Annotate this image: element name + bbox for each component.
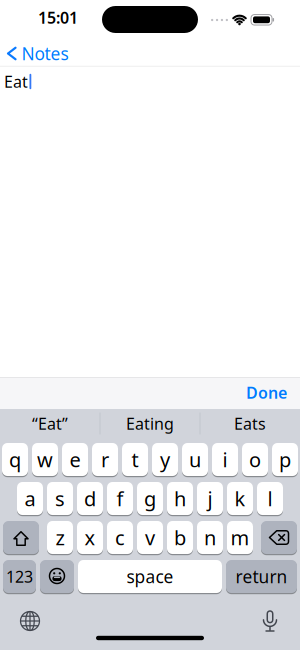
staticText: k bbox=[234, 485, 245, 512]
button[interactable]: y bbox=[152, 442, 178, 476]
staticText: f bbox=[116, 485, 123, 512]
button[interactable]: Done bbox=[246, 376, 287, 408]
button[interactable]: w bbox=[32, 442, 58, 476]
button[interactable]: g bbox=[137, 481, 163, 515]
button[interactable]: c bbox=[107, 520, 133, 554]
staticText: x bbox=[84, 524, 95, 551]
staticText: h bbox=[174, 485, 186, 512]
staticText: q bbox=[9, 446, 21, 473]
staticText: Notes bbox=[21, 42, 68, 65]
button[interactable]: z bbox=[47, 520, 73, 554]
button[interactable]: Eats bbox=[200, 406, 299, 440]
staticText: m bbox=[230, 524, 249, 551]
button[interactable]: Numbers bbox=[3, 559, 36, 593]
staticText: v bbox=[145, 524, 155, 551]
button[interactable]: e bbox=[62, 442, 88, 476]
button[interactable]: space bbox=[78, 559, 222, 593]
staticText: j bbox=[207, 485, 212, 512]
button[interactable]: b bbox=[167, 520, 193, 554]
button[interactable]: j bbox=[197, 481, 223, 515]
staticText: p bbox=[279, 446, 291, 473]
button[interactable]: n bbox=[197, 520, 223, 554]
button[interactable]: a bbox=[17, 481, 43, 515]
staticText: 123 bbox=[6, 566, 33, 587]
staticText: n bbox=[204, 524, 216, 551]
staticText: b bbox=[174, 524, 186, 551]
button[interactable]: u bbox=[182, 442, 208, 476]
staticText: Eats bbox=[234, 413, 266, 434]
button[interactable]: h bbox=[167, 481, 193, 515]
staticText: Eat bbox=[4, 71, 28, 92]
staticText: s bbox=[55, 485, 65, 512]
staticText: g bbox=[144, 485, 156, 512]
staticText: Eating bbox=[126, 413, 174, 434]
staticText: e bbox=[69, 446, 80, 473]
button[interactable]: i bbox=[212, 442, 238, 476]
button[interactable]: Delete bbox=[261, 520, 297, 554]
staticText: y bbox=[160, 446, 170, 473]
staticText: r bbox=[101, 446, 109, 473]
staticText: l bbox=[267, 485, 272, 512]
button[interactable]: l bbox=[257, 481, 283, 515]
button[interactable]: o bbox=[242, 442, 268, 476]
staticText: d bbox=[84, 485, 96, 512]
button[interactable]: f bbox=[107, 481, 133, 515]
button[interactable]: s bbox=[47, 481, 73, 515]
button[interactable]: Emoji bbox=[40, 559, 74, 593]
button[interactable]: Dictate bbox=[263, 611, 276, 631]
button[interactable]: t bbox=[122, 442, 148, 476]
button[interactable]: q bbox=[2, 442, 28, 476]
button[interactable]: p bbox=[272, 442, 298, 476]
staticText: space bbox=[126, 565, 173, 588]
staticText: z bbox=[55, 524, 64, 551]
staticText: a bbox=[24, 485, 35, 512]
button[interactable]: “Eat” bbox=[0, 406, 99, 440]
staticText: Done bbox=[246, 382, 287, 403]
staticText: t bbox=[131, 446, 138, 473]
staticText: u bbox=[189, 446, 201, 473]
staticText: 15:01 bbox=[38, 7, 78, 28]
button[interactable]: k bbox=[227, 481, 253, 515]
button[interactable]: m bbox=[227, 520, 253, 554]
staticText: return bbox=[235, 565, 287, 588]
button[interactable]: Back bbox=[8, 39, 68, 67]
staticText: c bbox=[115, 524, 125, 551]
button[interactable]: return bbox=[226, 559, 297, 593]
button[interactable]: d bbox=[77, 481, 103, 515]
button[interactable]: v bbox=[137, 520, 163, 554]
button[interactable]: Shift bbox=[3, 520, 39, 554]
staticText: w bbox=[37, 446, 53, 473]
button[interactable]: r bbox=[92, 442, 118, 476]
button[interactable]: Next keyboard bbox=[20, 611, 39, 630]
button[interactable]: Eating bbox=[100, 406, 199, 440]
button[interactable]: x bbox=[77, 520, 103, 554]
staticText: “Eat” bbox=[32, 413, 68, 434]
staticText: o bbox=[249, 446, 261, 473]
staticText: i bbox=[222, 446, 227, 473]
